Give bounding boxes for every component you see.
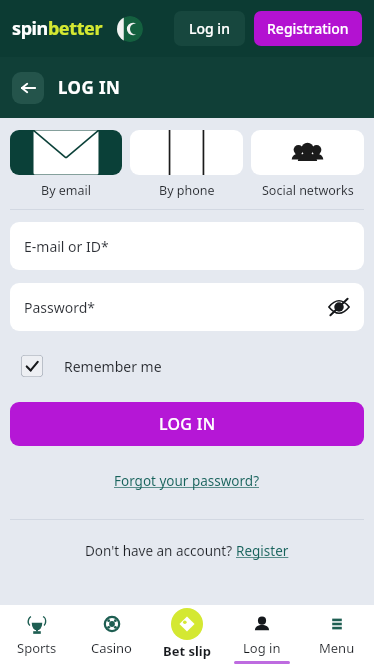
staticText: LOG IN xyxy=(159,413,216,435)
staticText: Menu xyxy=(319,639,355,657)
staticText: Sports xyxy=(17,639,57,657)
staticText: Forgot your password? xyxy=(114,472,260,490)
button[interactable]: Social networks xyxy=(251,130,364,199)
button[interactable]: Forgot your password? xyxy=(110,468,264,494)
button[interactable]: Show password xyxy=(328,296,350,318)
staticText: Remember me xyxy=(64,357,162,376)
button[interactable]: Language xyxy=(117,16,143,42)
staticText: By phone xyxy=(159,182,215,199)
staticText: LOG IN xyxy=(58,76,121,99)
button[interactable]: By email xyxy=(10,130,122,199)
button[interactable]: By phone xyxy=(130,130,243,199)
button[interactable]: Password* xyxy=(10,283,364,331)
button[interactable]: spinbetter xyxy=(12,16,103,41)
staticText: E-mail or ID* xyxy=(24,237,109,256)
button[interactable]: Menu xyxy=(299,605,374,664)
staticText: By email xyxy=(41,182,91,199)
button[interactable]: LOG IN xyxy=(10,402,364,446)
staticText: Social networks xyxy=(262,182,354,199)
staticText: Bet slip xyxy=(163,642,211,660)
button[interactable]: E-mail or ID* xyxy=(10,222,364,270)
staticText: Log in xyxy=(243,639,281,657)
button[interactable]: Remember me xyxy=(10,353,162,379)
button[interactable]: Sports xyxy=(0,605,74,664)
button[interactable]: Log in xyxy=(174,11,245,46)
button[interactable]: Registration xyxy=(254,11,362,46)
staticText: Casino xyxy=(91,639,132,657)
button[interactable]: Casino xyxy=(74,605,149,664)
button[interactable]: Log in xyxy=(224,605,299,664)
staticText: Password* xyxy=(24,298,96,317)
button[interactable]: Back xyxy=(12,72,44,104)
staticText: Log in xyxy=(189,19,230,38)
staticText: spinbetter xyxy=(12,16,103,41)
staticText: Don't have an account? xyxy=(85,542,236,560)
button[interactable]: Bet slip xyxy=(149,605,224,664)
button[interactable]: Register xyxy=(236,542,289,560)
staticText: Register xyxy=(236,542,289,560)
staticText: Registration xyxy=(267,19,349,38)
